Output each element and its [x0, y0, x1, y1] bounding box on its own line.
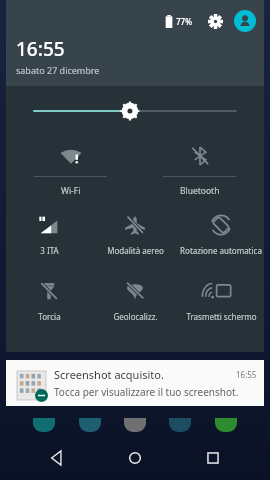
button[interactable]: Modalità aereo [92, 204, 178, 256]
button[interactable]: User [234, 10, 256, 32]
button[interactable]: Recents [192, 437, 234, 479]
button[interactable]: Brightness [34, 99, 236, 123]
staticText: Tocca per visualizzare il tuo screenshot… [54, 385, 239, 399]
button[interactable]: Screenshot acquisito. [6, 360, 264, 406]
staticText: 16:55 [16, 36, 65, 62]
button[interactable]: Geolocalizz. [92, 270, 178, 322]
button[interactable]: Rotazione automatica [178, 204, 264, 256]
staticText: Trasmetti schermo [186, 311, 257, 322]
button[interactable]: Bluetooth [135, 136, 264, 197]
staticText: Screenshot acquisito. [54, 367, 236, 382]
staticText: 3 ITA [40, 245, 59, 256]
staticText: sabato 27 dicembre [16, 64, 100, 76]
button[interactable]: 3 ITA [6, 204, 92, 256]
button[interactable]: Back [36, 437, 78, 479]
button[interactable]: Trasmetti schermo [178, 270, 264, 322]
staticText: Torcia [38, 311, 61, 322]
button[interactable]: Wi-Fi [6, 136, 135, 197]
staticText: 77% [176, 16, 192, 27]
button[interactable]: Torcia [6, 270, 92, 322]
staticText: Wi-Fi [61, 185, 81, 197]
staticText: Modalità aereo [107, 245, 164, 256]
staticText: Geolocalizz. [113, 311, 158, 322]
staticText: Rotazione automatica [180, 245, 262, 256]
staticText: 16:55 [236, 369, 257, 380]
button[interactable]: Settings [204, 10, 226, 32]
staticText: Bluetooth [180, 185, 220, 197]
button[interactable]: Home [114, 437, 156, 479]
